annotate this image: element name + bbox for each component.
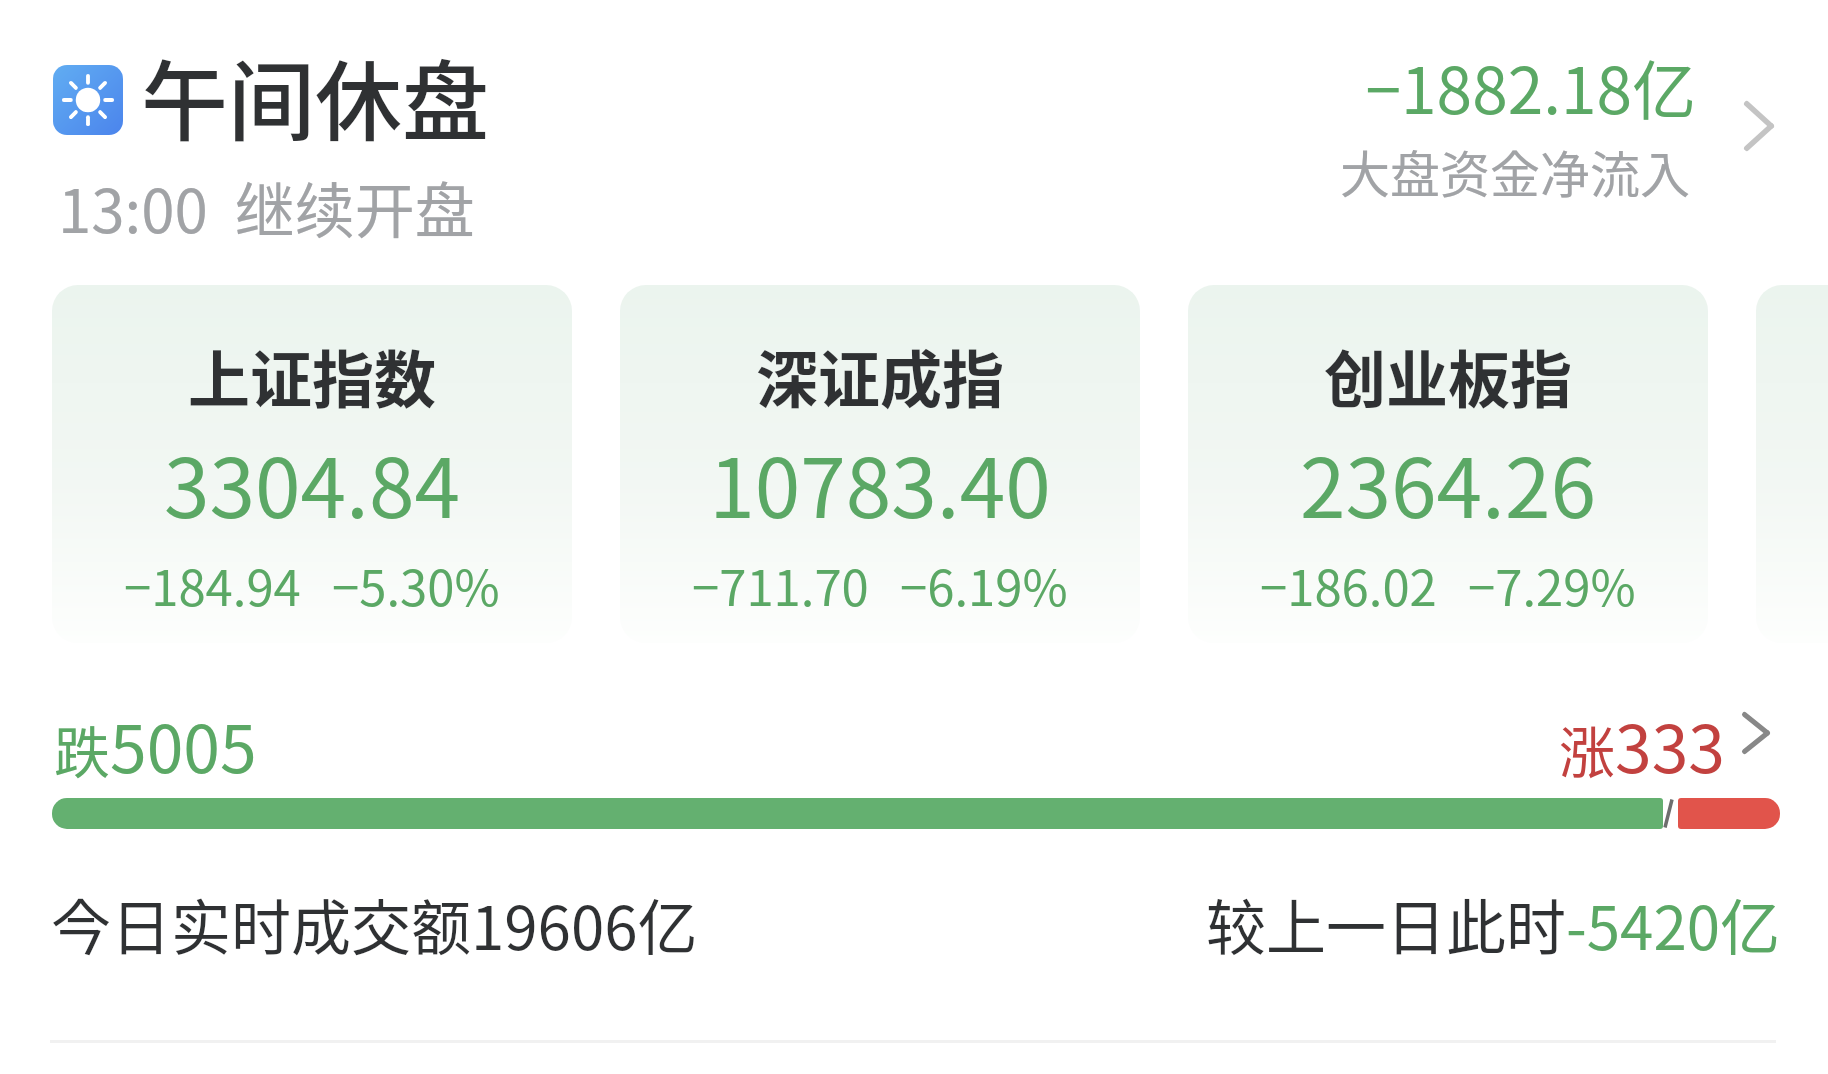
other: Market session status bbox=[53, 65, 123, 135]
button[interactable]: 深证成指 bbox=[620, 285, 1140, 643]
button[interactable]: 创业板指 bbox=[1188, 285, 1708, 643]
staticText: 10783.40 bbox=[620, 423, 1140, 542]
button[interactable]: 上证指数 bbox=[52, 285, 572, 643]
staticText: −7.29% bbox=[1468, 549, 1636, 620]
staticText: −711.70 bbox=[692, 549, 869, 620]
button[interactable]: 跌5005 bbox=[0, 694, 1828, 788]
staticText: −6.19% bbox=[900, 549, 1068, 620]
staticText: −1882.18亿 bbox=[1100, 40, 1696, 133]
staticText: 3304.84 bbox=[52, 423, 572, 542]
staticText: 跌5005 bbox=[54, 696, 257, 790]
staticText: −186.02 bbox=[1260, 549, 1437, 620]
staticText: 上证指数 bbox=[52, 331, 572, 421]
staticText: −184.94 bbox=[124, 549, 301, 620]
button[interactable]: Open market fund flow detail bbox=[1738, 95, 1780, 157]
button[interactable]: Open advancers and decliners bbox=[1736, 706, 1776, 760]
button[interactable]: 科创50 bbox=[1756, 285, 1828, 643]
staticText: 今日实时成交额19606亿 bbox=[51, 880, 698, 967]
staticText: 涨333 bbox=[1100, 696, 1725, 790]
button[interactable]: Market session status bbox=[0, 0, 1828, 262]
other: Advancers / decliners ratio bbox=[52, 798, 1780, 829]
staticText: 大盘资金净流入 bbox=[1100, 135, 1690, 207]
staticText: 较上一日此时-5420亿 bbox=[1040, 880, 1780, 967]
staticText: 午间休盘 bbox=[141, 33, 489, 159]
staticText: −5.30% bbox=[332, 549, 500, 620]
staticText: 深证成指 bbox=[620, 331, 1140, 421]
staticText: 创业板指 bbox=[1188, 331, 1708, 421]
staticText: 13:00 继续开盘 bbox=[58, 163, 475, 250]
staticText: 2364.26 bbox=[1188, 423, 1708, 542]
